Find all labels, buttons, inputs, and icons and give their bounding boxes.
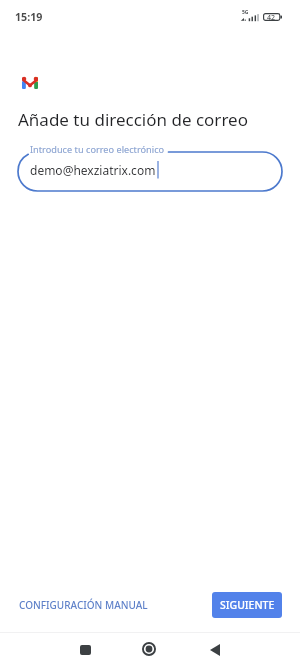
staticText: 15:19 [15,10,43,25]
staticText: 42 [267,13,276,23]
button[interactable]: Recent apps [65,633,105,668]
staticText: SIGUIENTE [220,598,275,612]
staticText: Añade tu dirección de correo [18,108,248,131]
staticText: demo@hexziatrix.com [30,162,156,178]
button[interactable]: SIGUIENTE [212,592,282,618]
button[interactable]: Home [129,633,169,668]
staticText: 5G [242,9,249,16]
button[interactable]: Back [195,633,235,668]
button[interactable]: CONFIGURACIÓN MANUAL [13,592,154,618]
staticText: CONFIGURACIÓN MANUAL [19,598,148,612]
staticText: Introduce tu correo electrónico [30,143,165,156]
